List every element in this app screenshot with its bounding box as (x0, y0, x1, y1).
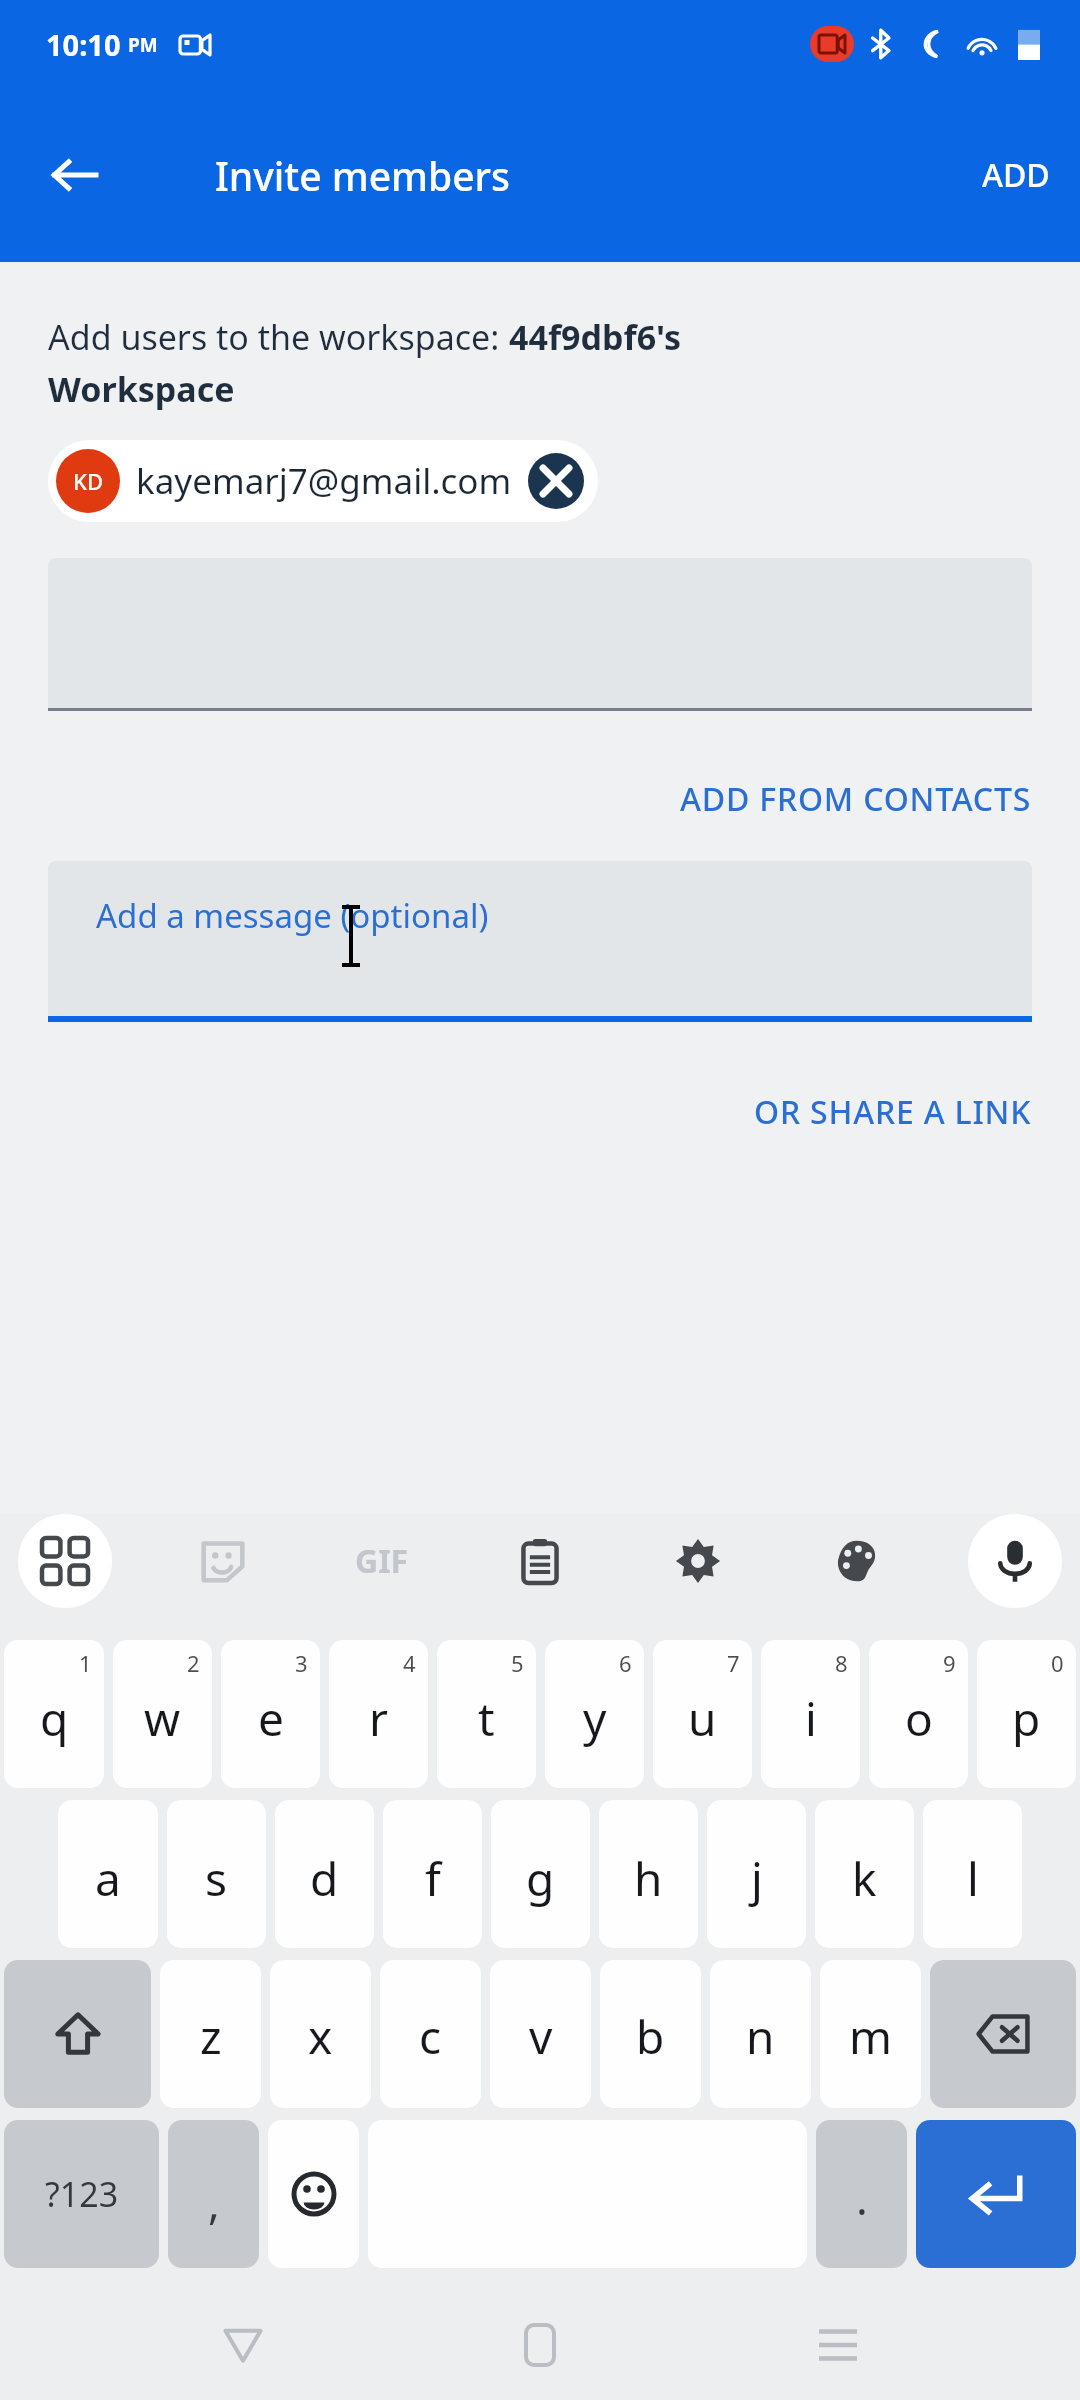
button[interactable]: 9 (869, 1640, 968, 1788)
staticText: d (310, 1847, 339, 1910)
staticText: c (419, 2005, 442, 2068)
staticText: y (583, 1687, 607, 1750)
button[interactable]: KD (48, 440, 598, 522)
button[interactable]: Back (30, 131, 118, 219)
button[interactable]: d (275, 1800, 374, 1948)
button[interactable]: v (490, 1960, 591, 2108)
button[interactable]: Clipboard (493, 1514, 587, 1608)
button[interactable]: s (167, 1800, 266, 1948)
button[interactable]: 8 (761, 1640, 860, 1788)
staticText: x (308, 2005, 333, 2068)
staticText: k (852, 1847, 877, 1910)
staticText: 9 (943, 1648, 956, 1678)
staticText: , (208, 2172, 220, 2232)
button[interactable]: f (383, 1800, 482, 1948)
button[interactable]: 7 (653, 1640, 752, 1788)
staticText: . (856, 2168, 868, 2228)
staticText: OR SHARE A LINK (754, 1090, 1032, 1134)
button[interactable]: j (707, 1800, 806, 1948)
staticText: b (636, 2005, 665, 2068)
button[interactable]: 2 (113, 1640, 212, 1788)
button[interactable]: Add a message (optional) (48, 861, 1032, 1016)
staticText: l (967, 1847, 979, 1910)
staticText: m (849, 2005, 893, 2068)
button[interactable]: GIF (335, 1514, 429, 1608)
staticText: Add a message (optional) (96, 893, 489, 938)
staticText: g (526, 1847, 555, 1910)
button[interactable]: c (380, 1960, 481, 2108)
button[interactable]: 6 (545, 1640, 644, 1788)
button[interactable]: Stickers (176, 1514, 270, 1608)
staticText: 8 (835, 1648, 848, 1678)
staticText: 5 (511, 1648, 524, 1678)
staticText: 10:10 (46, 25, 121, 64)
button[interactable]: 0 (977, 1640, 1076, 1788)
staticText: ADD (982, 153, 1050, 197)
button[interactable]: Voice input (968, 1514, 1062, 1608)
button[interactable]: Remove (528, 453, 584, 509)
staticText: p (1012, 1687, 1041, 1750)
button[interactable]: x (270, 1960, 371, 2108)
button[interactable]: l (923, 1800, 1022, 1948)
staticText: e (258, 1687, 284, 1750)
button[interactable]: g (491, 1800, 590, 1948)
staticText: q (40, 1687, 69, 1750)
button[interactable]: Enter (916, 2120, 1076, 2268)
staticText: w (144, 1687, 181, 1750)
button[interactable]: Theme (810, 1514, 904, 1608)
button[interactable]: 4 (329, 1640, 428, 1788)
button[interactable]: Settings (651, 1514, 745, 1608)
button[interactable]: Keyboard modes (18, 1514, 112, 1608)
staticText: t (478, 1687, 495, 1750)
staticText: GIF (355, 1539, 409, 1583)
button[interactable]: Emoji (268, 2120, 359, 2268)
staticText: s (205, 1847, 228, 1910)
button[interactable]: z (160, 1960, 261, 2108)
button[interactable]: b (600, 1960, 701, 2108)
staticText: 6 (619, 1648, 632, 1678)
staticText: r (369, 1687, 388, 1750)
staticText: 7 (727, 1648, 740, 1678)
staticText: 2 (187, 1648, 200, 1678)
button[interactable]: ?123 (4, 2120, 159, 2268)
staticText: v (529, 2005, 553, 2068)
button[interactable]: Recents (783, 2290, 893, 2400)
button[interactable]: Backspace (930, 1960, 1076, 2108)
staticText: j (751, 1847, 763, 1910)
staticText: 1 (79, 1648, 92, 1678)
staticText: Invite members (215, 149, 511, 202)
staticText: 0 (1051, 1648, 1064, 1678)
button[interactable]: k (815, 1800, 914, 1948)
staticText: ADD FROM CONTACTS (680, 777, 1032, 821)
button[interactable]: 3 (221, 1640, 320, 1788)
staticText: f (425, 1847, 441, 1910)
button[interactable]: , (168, 2120, 259, 2268)
button[interactable]: 5 (437, 1640, 536, 1788)
staticText: 44f9dbf6's (509, 314, 682, 360)
button[interactable]: Back (188, 2290, 298, 2400)
button[interactable]: ADD FROM CONTACTS (664, 765, 1048, 833)
staticText: kayemarj7@gmail.com (136, 457, 512, 505)
staticText: 4 (403, 1648, 416, 1678)
button[interactable]: m (820, 1960, 921, 2108)
button[interactable]: 1 (4, 1640, 104, 1788)
staticText: Workspace (48, 366, 235, 412)
button[interactable]: . (816, 2120, 907, 2268)
staticText: z (200, 2005, 222, 2068)
staticText: i (805, 1687, 817, 1750)
button[interactable]: a (58, 1800, 158, 1948)
button[interactable]: ADD (952, 137, 1080, 213)
staticText: h (634, 1847, 663, 1910)
staticText: PM (128, 32, 158, 58)
button[interactable]: OR SHARE A LINK (738, 1078, 1048, 1146)
staticText: Add users to the workspace: (48, 314, 509, 360)
staticText: n (746, 2005, 775, 2068)
button[interactable]: Home (485, 2290, 595, 2400)
button[interactable]: Shift (4, 1960, 151, 2108)
button[interactable]: n (710, 1960, 811, 2108)
staticText: a (95, 1847, 121, 1910)
button[interactable]: h (599, 1800, 698, 1948)
staticText: u (688, 1687, 717, 1750)
